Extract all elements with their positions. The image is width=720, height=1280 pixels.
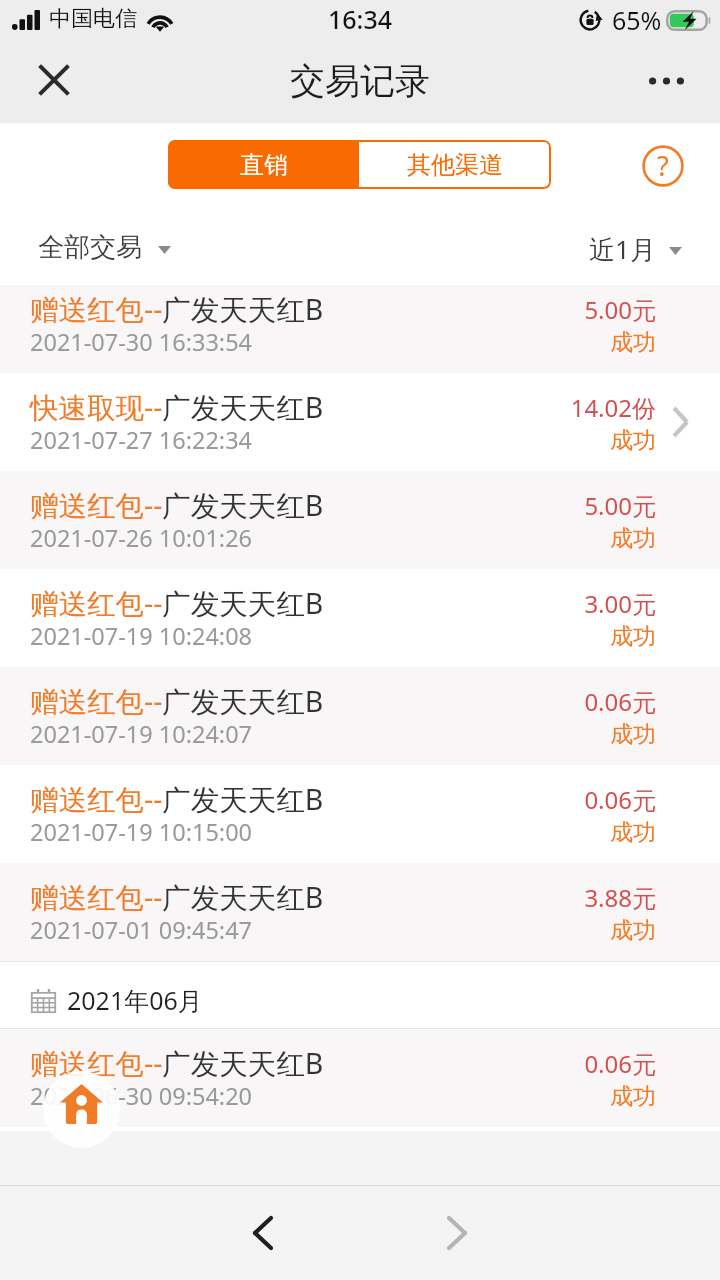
button[interactable]: Back [0,1186,360,1280]
staticText: 赠送红包--广发天天红B [30,878,324,917]
staticText: 0.06元 [584,685,656,718]
button[interactable]: Close [30,56,78,104]
button[interactable]: 近1月 [589,231,682,267]
staticText: 3.00元 [584,587,656,620]
staticText: 近1月 [589,231,656,267]
staticText: 成功 [610,328,656,357]
staticText: 65% [612,3,662,37]
staticText: 成功 [610,720,656,749]
staticText: 赠送红包--广发天天红B [30,486,324,525]
staticText: 交易记录 [290,59,430,103]
button[interactable]: 赠送红包--广发天天红B [0,285,720,373]
staticText: 赠送红包--广发天天红B [30,290,324,329]
staticText: 2021-07-30 16:33:54 [30,326,253,358]
button[interactable]: 直销 [168,140,359,189]
staticText: 快速取现--广发天天红B [30,388,324,427]
staticText: 成功 [610,524,656,553]
staticText: 2021-07-19 10:24:08 [30,620,253,652]
staticText: 成功 [610,426,656,455]
staticText: 成功 [610,916,656,945]
staticText: 成功 [610,1082,656,1111]
button[interactable]: 赠送红包--广发天天红B [0,1029,720,1127]
staticText: 5.00元 [584,489,656,522]
staticText: 全部交易 [38,231,142,264]
staticText: 2021-07-27 16:22:34 [30,424,253,456]
button[interactable]: More options [642,57,690,105]
staticText: 2021年06月 [67,983,203,1017]
staticText: 赠送红包--广发天天红B [30,682,324,721]
staticText: 3.88元 [584,881,656,914]
staticText: 5.00元 [584,293,656,326]
staticText: 2021-07-19 10:24:07 [30,718,253,750]
staticText: 2021-06-30 09:54:20 [30,1080,253,1112]
button[interactable]: 赠送红包--广发天天红B [0,471,720,569]
staticText: 赠送红包--广发天天红B [30,584,324,623]
button[interactable]: Forward [360,1186,720,1280]
staticText: 成功 [610,622,656,651]
button[interactable]: 赠送红包--广发天天红B [0,667,720,765]
staticText: 2021-07-01 09:45:47 [30,914,253,946]
staticText: 直销 [240,150,288,180]
button[interactable]: 快速取现--广发天天红B [0,373,720,471]
button[interactable]: 其他渠道 [359,140,551,189]
button[interactable]: Home [43,1071,120,1148]
staticText: 0.06元 [584,1047,656,1080]
staticText: 0.06元 [584,783,656,816]
staticText: 2021-07-26 10:01:26 [30,522,253,554]
staticText: 成功 [610,818,656,847]
button[interactable]: 全部交易 [38,231,171,264]
button[interactable]: Help [641,144,685,188]
staticText: ? [657,147,669,184]
staticText: 赠送红包--广发天天红B [30,780,324,819]
button[interactable]: 赠送红包--广发天天红B [0,569,720,667]
button[interactable]: 赠送红包--广发天天红B [0,765,720,863]
staticText: 赠送红包--广发天天红B [30,1044,324,1083]
staticText: 2021-07-19 10:15:00 [30,816,253,848]
staticText: 中国电信 [49,5,137,33]
button[interactable]: 赠送红包--广发天天红B [0,863,720,961]
staticText: 16:34 [328,2,393,36]
staticText: 14.02份 [570,391,656,424]
staticText: 其他渠道 [407,150,503,180]
